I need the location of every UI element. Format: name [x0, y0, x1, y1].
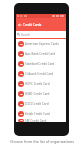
staticText: ICICI Credit Card — [25, 102, 49, 106]
staticText: Axis Bank Credit Card — [25, 52, 56, 56]
button[interactable]: HDFC Credit Card — [16, 79, 66, 89]
button[interactable]: American Express Cards — [16, 39, 66, 49]
staticText: Search — [21, 33, 31, 37]
staticText: Credit Cards — [23, 23, 42, 27]
staticText: Kotak Credit Card — [25, 112, 50, 116]
staticText: Choose from the list of organizations — [10, 139, 74, 144]
button[interactable]: Axis Bank Credit Card — [16, 49, 66, 59]
button[interactable]: Back — [16, 18, 23, 31]
staticText: HSBC Credit Card — [25, 92, 50, 96]
button[interactable]: SBI Credit Card — [16, 119, 66, 122]
button[interactable]: Kotak Credit Card — [16, 109, 66, 119]
button[interactable]: Search — [16, 31, 66, 38]
staticText: American Express Cards — [25, 42, 59, 46]
staticText: SBI Credit Card — [25, 119, 47, 122]
staticText: HDFC Credit Card — [25, 82, 50, 86]
button[interactable]: ICICI Credit Card — [16, 99, 66, 109]
staticText: Citibank Credit Card — [25, 72, 54, 76]
staticText: Standard Credit Card — [25, 62, 55, 66]
button[interactable]: Standard Credit Card — [16, 59, 66, 69]
button[interactable]: Citibank Credit Card — [16, 69, 66, 79]
button[interactable]: HSBC Credit Card — [16, 89, 66, 99]
